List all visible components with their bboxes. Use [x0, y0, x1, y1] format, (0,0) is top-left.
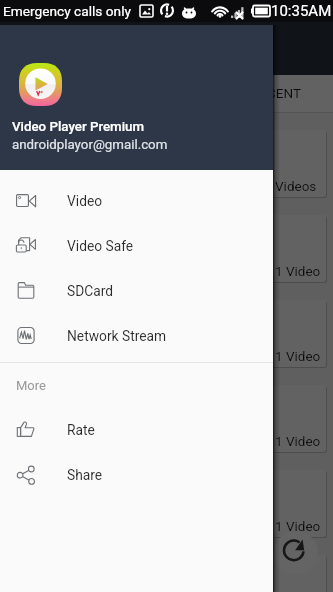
staticText: Emergency calls only	[3, 3, 131, 19]
staticText: Rate	[67, 422, 95, 438]
button[interactable]: Video	[0, 178, 273, 223]
staticText: Video Player Premium	[12, 119, 145, 135]
button[interactable]: Network Stream	[0, 313, 273, 358]
staticText: SDCard	[67, 283, 114, 299]
button[interactable]: Videos	[8, 130, 326, 197]
button[interactable]: Share	[0, 452, 273, 497]
staticText: 1 Video	[275, 348, 321, 364]
staticText: 10:35AM	[271, 2, 332, 20]
other: App icon	[19, 63, 62, 106]
button[interactable]: Refresh	[274, 531, 318, 575]
staticText: 1 Video	[275, 518, 321, 534]
button[interactable]: 1 Video	[8, 215, 326, 282]
button[interactable]: Video Safe	[0, 223, 273, 268]
button[interactable]: 1 Video	[8, 470, 326, 537]
staticText: More	[16, 378, 46, 393]
staticText: 1 Video	[275, 263, 321, 279]
staticText: RECENT	[251, 85, 301, 101]
button[interactable]: 1 Video	[8, 385, 326, 452]
staticText: Network Stream	[67, 328, 167, 344]
staticText: Share	[67, 467, 103, 483]
staticText: Videos	[275, 178, 317, 194]
staticText: 1 Video	[275, 433, 321, 449]
button[interactable]: Rate	[0, 407, 273, 452]
button[interactable]: SDCard	[0, 268, 273, 313]
staticText: Video Safe	[67, 238, 134, 254]
button[interactable]: 1 Video	[8, 300, 326, 367]
staticText: Video	[67, 193, 103, 209]
staticText: androidplayor@gmail.com	[12, 137, 168, 153]
button[interactable]: 1 Video	[8, 555, 326, 592]
